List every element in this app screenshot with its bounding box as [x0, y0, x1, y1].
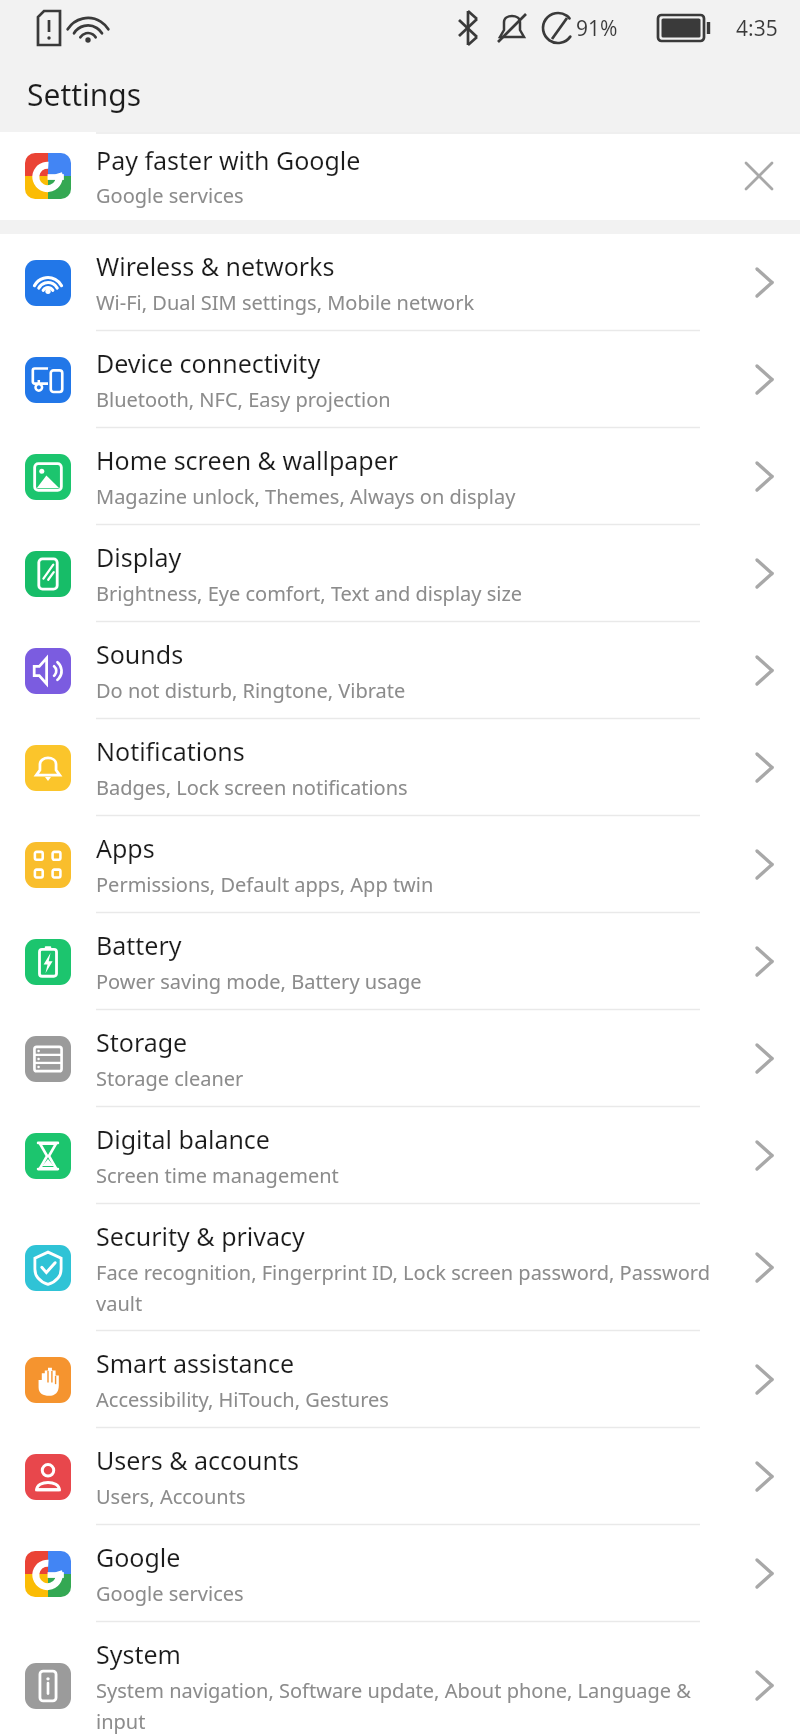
staticText: Google [96, 1540, 181, 1574]
staticText: Do not disturb, Ringtone, Vibrate [96, 677, 406, 704]
staticText: Smart assistance [96, 1346, 294, 1380]
staticText: Google services [96, 1580, 244, 1607]
staticText: Users & accounts [96, 1443, 300, 1477]
staticText: 4:35 [736, 14, 778, 43]
staticText: Accessibility, HiTouch, Gestures [96, 1386, 389, 1413]
staticText: Apps [96, 831, 155, 865]
staticText: Storage cleaner [96, 1065, 244, 1092]
staticText: Bluetooth, NFC, Easy projection [96, 386, 391, 413]
staticText: Permissions, Default apps, App twin [96, 871, 434, 898]
staticText: Storage [96, 1025, 188, 1059]
button[interactable]: Notifications [0, 719, 800, 816]
button[interactable]: Home screen & wallpaper [0, 428, 800, 525]
button[interactable]: Pay faster with Google [0, 132, 800, 220]
button[interactable]: System [0, 1622, 800, 1734]
staticText: System [96, 1637, 181, 1671]
button[interactable]: Security & privacy [0, 1204, 800, 1331]
button[interactable]: Users & accounts [0, 1428, 800, 1525]
staticText: Wireless & networks [96, 249, 335, 283]
staticText: Security & privacy [96, 1219, 305, 1253]
button[interactable]: Google [0, 1525, 800, 1622]
button[interactable]: Device connectivity [0, 331, 800, 428]
staticText: Sounds [96, 637, 184, 671]
button[interactable]: Display [0, 525, 800, 622]
staticText: Settings [27, 74, 142, 115]
button[interactable]: Smart assistance [0, 1331, 800, 1428]
staticText: Brightness, Eye comfort, Text and displa… [96, 580, 523, 607]
staticText: Display [96, 540, 182, 574]
button[interactable]: Apps [0, 816, 800, 913]
button[interactable]: Sounds [0, 622, 800, 719]
staticText: Badges, Lock screen notifications [96, 774, 408, 801]
staticText: Google services [96, 182, 244, 209]
staticText: Device connectivity [96, 346, 321, 380]
staticText: Pay faster with Google [96, 143, 361, 177]
staticText: Notifications [96, 734, 245, 768]
staticText: Home screen & wallpaper [96, 443, 399, 477]
staticText: Digital balance [96, 1122, 270, 1156]
staticText: Wi-Fi, Dual SIM settings, Mobile network [96, 289, 475, 316]
button[interactable]: Dismiss [718, 132, 800, 220]
staticText: Face recognition, Fingerprint ID, Lock s… [96, 1259, 720, 1316]
staticText: System navigation, Software update, Abou… [96, 1677, 720, 1734]
staticText: Users, Accounts [96, 1483, 246, 1510]
staticText: Magazine unlock, Themes, Always on displ… [96, 483, 516, 510]
button[interactable]: Battery [0, 913, 800, 1010]
staticText: Battery [96, 928, 182, 962]
staticText: Power saving mode, Battery usage [96, 968, 422, 995]
button[interactable]: Digital balance [0, 1107, 800, 1204]
button[interactable]: Storage [0, 1010, 800, 1107]
staticText: 91% [576, 14, 618, 43]
button[interactable]: Wireless & networks [0, 234, 800, 331]
staticText: Screen time management [96, 1162, 339, 1189]
